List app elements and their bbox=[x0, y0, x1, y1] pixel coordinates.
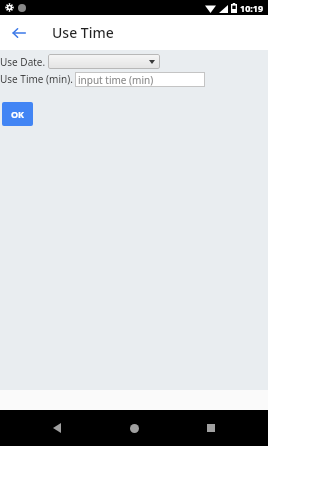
button[interactable]: Back bbox=[37, 410, 77, 446]
button[interactable]: Use date selector bbox=[48, 54, 160, 69]
staticText: Use Date. bbox=[0, 55, 46, 69]
staticText: 10:19 bbox=[240, 2, 264, 14]
button[interactable]: OK bbox=[2, 102, 33, 126]
button[interactable]: Input time in minutes bbox=[75, 72, 205, 87]
staticText: input time (min) bbox=[78, 73, 154, 87]
button[interactable]: Home bbox=[114, 410, 154, 446]
button[interactable]: Back bbox=[8, 22, 30, 44]
staticText: OK bbox=[11, 108, 25, 120]
button[interactable]: Recent apps bbox=[191, 410, 231, 446]
staticText: Use Time (min). bbox=[0, 72, 73, 86]
staticText: Use Time bbox=[52, 23, 114, 42]
